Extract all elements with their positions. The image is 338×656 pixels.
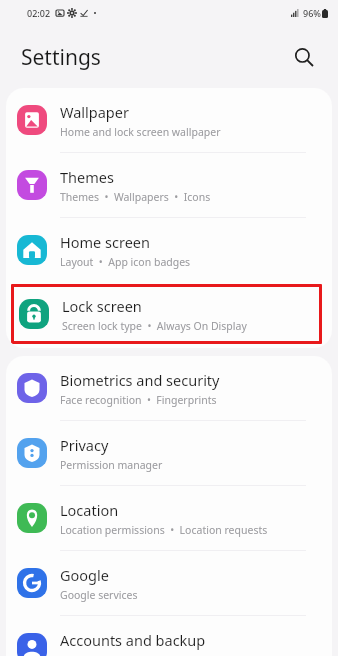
- button[interactable]: Themes: [6, 153, 332, 218]
- button[interactable]: Lock screen: [11, 284, 322, 344]
- staticText: Google: [60, 565, 109, 585]
- staticText: Settings: [21, 43, 101, 72]
- staticText: Location permissions • Location requests: [60, 523, 268, 537]
- button[interactable]: Search: [284, 37, 324, 77]
- button[interactable]: Home screen: [6, 218, 332, 282]
- staticText: Wallpaper: [60, 102, 129, 122]
- staticText: Accounts and backup: [60, 630, 206, 650]
- staticText: Home and lock screen wallpaper: [60, 125, 221, 139]
- staticText: Home screen: [60, 232, 150, 252]
- button[interactable]: Biometrics and security: [6, 356, 332, 421]
- button[interactable]: Wallpaper: [6, 88, 332, 153]
- staticText: Screen lock type • Always On Display: [62, 319, 247, 333]
- staticText: Face recognition • Fingerprints: [60, 393, 217, 407]
- staticText: Privacy: [60, 435, 109, 455]
- staticText: Biometrics and security: [60, 370, 220, 390]
- button[interactable]: Privacy: [6, 421, 332, 486]
- button[interactable]: Accounts and backup: [6, 616, 332, 656]
- staticText: 96%: [303, 7, 321, 19]
- staticText: Themes: [60, 167, 114, 187]
- staticText: Location: [60, 500, 119, 520]
- staticText: Google services: [60, 588, 138, 602]
- staticText: Themes • Wallpapers • Icons: [60, 190, 211, 204]
- staticText: Layout • App icon badges: [60, 255, 191, 269]
- button[interactable]: Google: [6, 551, 332, 616]
- button[interactable]: Location: [6, 486, 332, 551]
- staticText: Permission manager: [60, 458, 163, 472]
- staticText: 02:02: [27, 7, 51, 19]
- staticText: Lock screen: [62, 296, 142, 316]
